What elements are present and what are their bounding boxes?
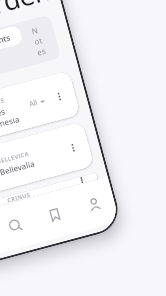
staticText: Plants bbox=[0, 31, 12, 48]
staticText: Abies monesia bbox=[0, 99, 34, 132]
button[interactable]: Profile bbox=[68, 177, 120, 232]
staticText: All bbox=[28, 97, 39, 109]
staticText: Notes bbox=[30, 23, 47, 58]
button[interactable]: Home bbox=[0, 208, 2, 263]
staticText: BELLEVICA bbox=[0, 149, 30, 165]
staticText: ACERES bbox=[0, 96, 5, 109]
button[interactable]: Plants bbox=[0, 25, 23, 55]
staticText: CRINUS bbox=[6, 190, 31, 203]
button[interactable]: Saved bbox=[29, 187, 80, 242]
button[interactable]: BELLEVICA bbox=[0, 121, 95, 203]
button[interactable]: More options bbox=[48, 86, 70, 108]
button[interactable]: More options bbox=[72, 174, 91, 186]
staticText: Bellevalia bbox=[0, 157, 36, 177]
staticText: My Garden bbox=[0, 0, 54, 42]
button[interactable]: More options bbox=[62, 137, 84, 159]
button[interactable]: CRINUS bbox=[0, 173, 98, 216]
button[interactable]: ACERES bbox=[0, 70, 81, 151]
button[interactable]: Explore bbox=[0, 198, 40, 253]
button[interactable]: Notes bbox=[18, 17, 59, 64]
